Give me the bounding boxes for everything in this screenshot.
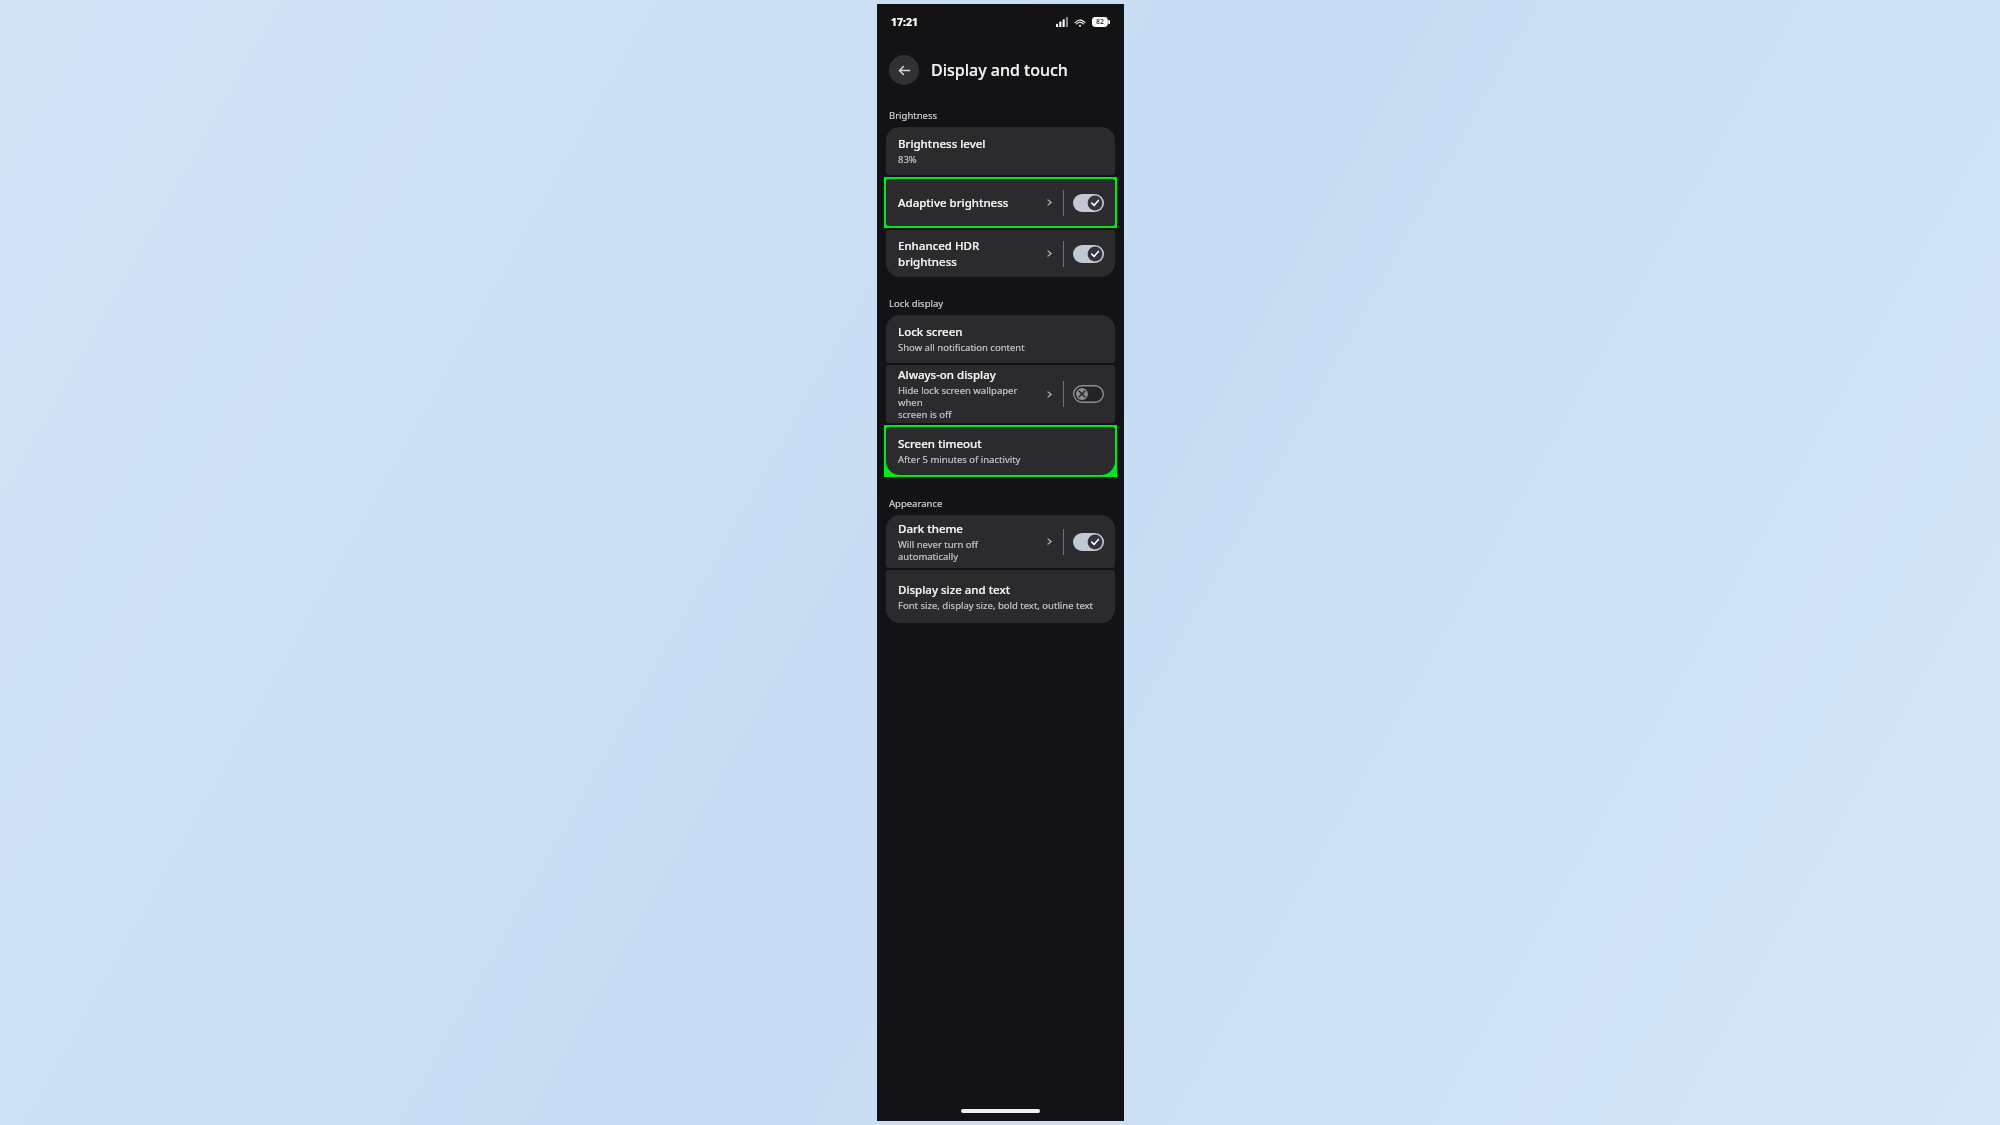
staticText: Always-on display [898,367,996,383]
staticText: Will never turn off automatically [898,538,1038,563]
staticText: Enhanced HDR brightness [898,238,1038,270]
button[interactable]: Back [889,55,919,85]
staticText: Display and touch [931,59,1068,81]
button[interactable]: Adaptive brightness [886,179,1115,226]
button[interactable]: Enhanced HDR brightness [886,230,1115,277]
staticText: Hide lock screen wallpaper when screen i… [898,384,1038,421]
button[interactable]: Toggle on [1073,194,1104,212]
staticText: Brightness level [898,136,986,152]
button[interactable]: Screen timeout [886,427,1115,475]
button[interactable]: Toggle off [1073,385,1104,403]
staticText: Appearance [889,497,943,510]
button[interactable]: Display size and text [886,570,1115,623]
staticText: 82 [1096,17,1105,27]
button[interactable]: Dark theme [886,515,1115,568]
staticText: 17:21 [891,15,918,29]
staticText: Lock screen [898,324,963,340]
staticText: Show all notification content [898,341,1025,354]
staticText: Adaptive brightness [898,195,1009,211]
button[interactable]: Lock screen [886,315,1115,363]
staticText: Font size, display size, bold text, outl… [898,599,1094,612]
staticText: 83% [898,153,917,166]
staticText: Dark theme [898,521,963,537]
staticText: After 5 minutes of inactivity [898,453,1021,466]
staticText: Display size and text [898,582,1011,598]
button[interactable]: Toggle on [1073,245,1104,263]
button[interactable]: Brightness level [886,127,1115,175]
button[interactable]: Toggle on [1073,533,1104,551]
staticText: Brightness [889,109,938,122]
staticText: Screen timeout [898,436,982,452]
button[interactable]: Always-on display [886,365,1115,423]
staticText: Lock display [889,297,944,310]
